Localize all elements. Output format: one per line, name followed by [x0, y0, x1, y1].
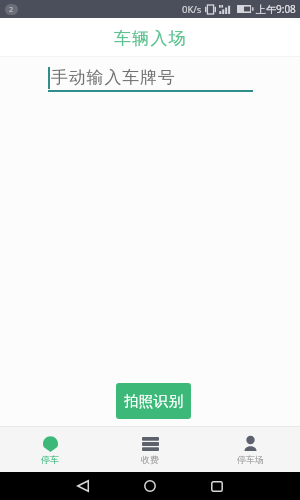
button[interactable]: 停车 [0, 427, 100, 472]
staticText: 停车场 [237, 454, 264, 465]
staticText: 拍照识别 [124, 392, 184, 410]
staticText: 车辆入场 [114, 28, 187, 49]
button[interactable]: Recents [206, 475, 228, 497]
staticText: 上午9:08 [256, 2, 296, 16]
button[interactable]: Back [72, 475, 94, 497]
staticText: 0K/s [182, 3, 202, 16]
button[interactable]: 手动输入车牌号 [48, 64, 253, 92]
staticText: 2 [9, 5, 14, 15]
button[interactable]: Home [139, 475, 161, 497]
staticText: 停车 [41, 454, 59, 465]
staticText: 手动输入车牌号 [51, 67, 176, 88]
staticText: 收费 [141, 454, 159, 465]
button[interactable]: 停车场 [200, 427, 300, 472]
button[interactable]: 拍照识别 [116, 383, 191, 419]
button[interactable]: 收费 [100, 427, 200, 472]
